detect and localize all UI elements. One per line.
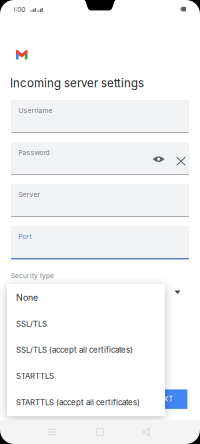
button[interactable]: NEXT xyxy=(140,389,187,409)
staticText: NEXT xyxy=(154,395,173,403)
staticText: STARTTLS (accept all certificates) xyxy=(16,398,140,407)
button[interactable]: Recent apps xyxy=(37,420,67,444)
staticText: STARTTLS xyxy=(16,371,54,381)
staticText: Server xyxy=(18,191,40,199)
button[interactable]: SSL/TLS xyxy=(7,311,165,337)
staticText: Password xyxy=(18,149,49,157)
staticText: Username xyxy=(18,107,52,115)
button[interactable]: Back xyxy=(131,420,161,444)
staticText: None xyxy=(16,292,38,303)
staticText: Port xyxy=(18,233,31,241)
button[interactable]: STARTTLS xyxy=(7,363,165,389)
staticText: SSL/TLS (accept all certificates) xyxy=(16,345,133,355)
staticText: 10:00 xyxy=(8,6,25,14)
button[interactable]: STARTTLS (accept all certificates) xyxy=(7,389,165,416)
staticText: Security type xyxy=(11,272,54,280)
staticText: Incoming server settings xyxy=(10,76,144,90)
staticText: SSL/TLS xyxy=(16,319,47,329)
button[interactable]: None xyxy=(7,284,165,311)
button[interactable]: SSL/TLS (accept all certificates) xyxy=(7,337,165,363)
button[interactable]: Home xyxy=(85,420,115,444)
